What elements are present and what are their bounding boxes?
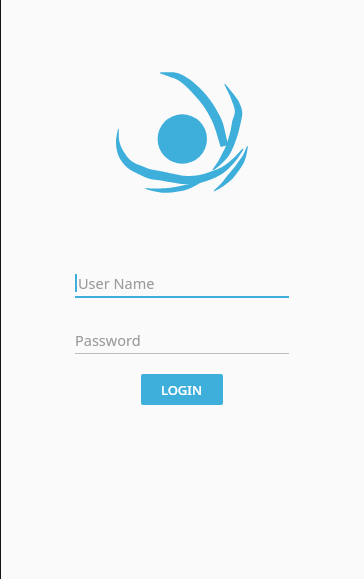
staticText: LOGIN — [161, 381, 203, 399]
staticText: Password — [75, 330, 141, 350]
button[interactable]: User Name — [75, 270, 289, 296]
staticText: User Name — [78, 273, 155, 293]
button[interactable]: LOGIN — [141, 374, 223, 405]
button[interactable]: Password — [75, 327, 289, 353]
